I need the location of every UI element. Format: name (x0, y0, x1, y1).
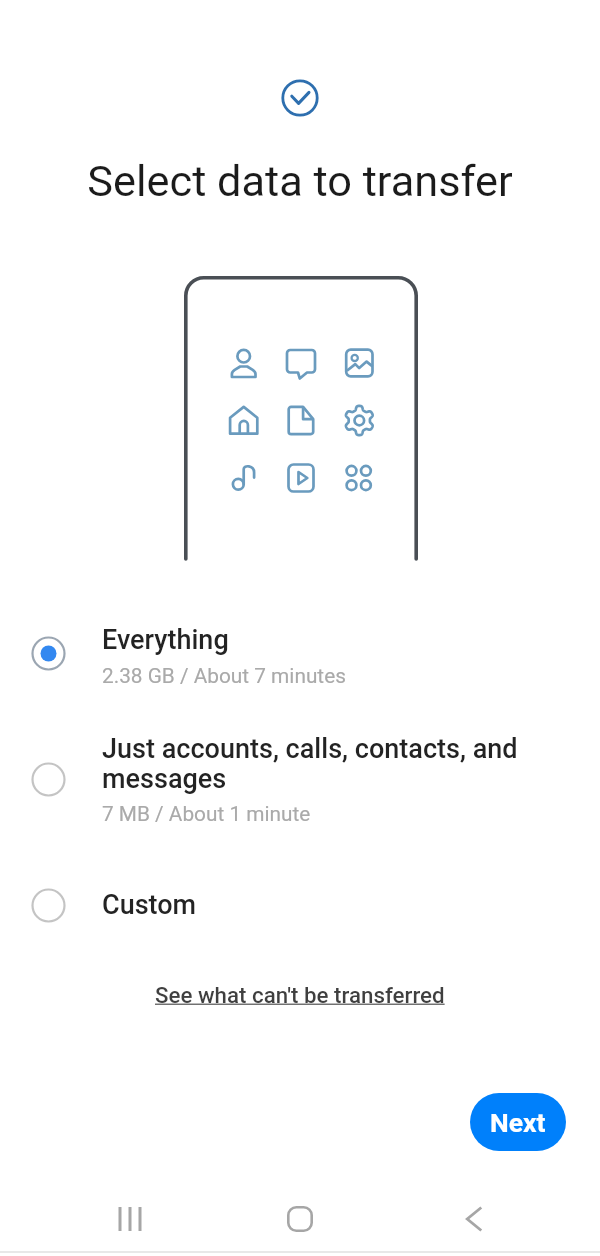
button[interactable]: Home (270, 1189, 330, 1249)
staticText: Select data to transfer (0, 156, 600, 207)
staticText: Custom (102, 889, 197, 921)
button[interactable]: Everything (0, 624, 600, 688)
button[interactable]: See what can't be transferred (147, 977, 453, 1013)
staticText: Just accounts, calls, contacts, and mess… (102, 733, 528, 794)
button[interactable]: Custom (0, 889, 600, 924)
button[interactable]: Recent apps (100, 1189, 160, 1249)
button[interactable]: Back (444, 1189, 504, 1249)
staticText: See what can't be transferred (155, 982, 445, 1008)
staticText: 2.38 GB / About 7 minutes (102, 664, 346, 688)
staticText: Next (490, 1107, 546, 1138)
staticText: 7 MB / About 1 minute (102, 802, 311, 826)
button[interactable]: Next (470, 1093, 566, 1151)
button[interactable]: Just accounts, calls, contacts, and mess… (0, 733, 600, 826)
staticText: Everything (102, 624, 229, 656)
